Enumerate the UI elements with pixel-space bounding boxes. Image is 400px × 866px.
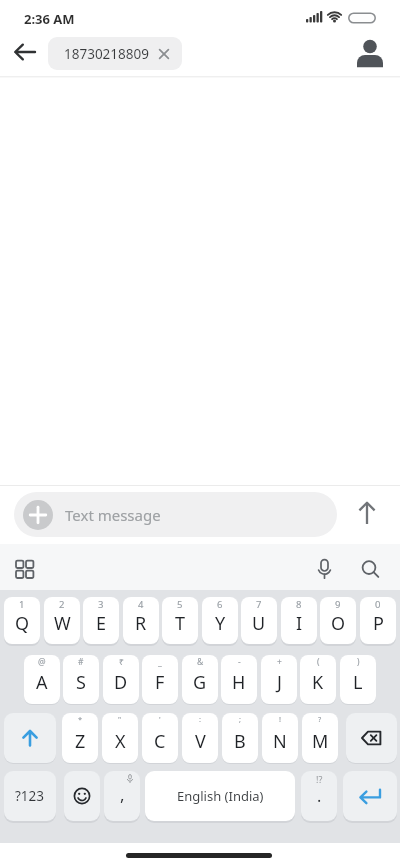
button[interactable]: *	[62, 713, 98, 763]
staticText: F	[155, 670, 165, 695]
staticText: Text message	[65, 505, 161, 525]
staticText: K	[312, 670, 324, 695]
staticText: &	[197, 656, 204, 668]
button[interactable]: 2	[44, 597, 80, 644]
staticText: L	[353, 670, 363, 695]
button[interactable]: #	[63, 655, 99, 704]
button[interactable]: 6	[202, 597, 238, 644]
staticText: English (India)	[177, 787, 264, 805]
staticText: ₹	[119, 656, 124, 668]
staticText: E	[96, 611, 107, 636]
staticText: R	[135, 611, 147, 636]
staticText: D	[114, 670, 128, 695]
staticText: (	[317, 656, 320, 668]
button[interactable]: ;	[222, 713, 258, 763]
button[interactable]: 5	[162, 597, 198, 644]
button[interactable]: (	[300, 655, 336, 704]
staticText: *	[78, 714, 83, 724]
button[interactable]: ₹	[103, 655, 139, 704]
button[interactable]: 3	[83, 597, 119, 644]
button[interactable]: 0	[360, 597, 396, 644]
button[interactable]: ?	[302, 713, 338, 763]
staticText: ,	[120, 783, 125, 806]
staticText: :	[199, 714, 202, 724]
button[interactable]: 1	[4, 597, 40, 644]
staticText: -	[238, 656, 241, 668]
staticText: '	[159, 714, 161, 724]
staticText: 4	[138, 598, 144, 611]
button[interactable]	[346, 713, 397, 763]
staticText: M	[312, 729, 329, 754]
button[interactable]	[356, 555, 385, 584]
staticText: P	[373, 611, 384, 636]
button[interactable]: 18730218809	[48, 37, 182, 70]
staticText: #	[78, 656, 84, 668]
staticText: 7	[256, 598, 262, 611]
staticText: 0	[375, 598, 381, 611]
staticText: _	[158, 656, 162, 668]
button[interactable]: '	[142, 713, 178, 763]
staticText: S	[76, 670, 86, 695]
button[interactable]: _	[142, 655, 178, 704]
button[interactable]: Text message	[14, 492, 337, 537]
button[interactable]	[310, 555, 339, 584]
staticText: W	[54, 611, 71, 636]
staticText: O	[331, 611, 346, 636]
staticText: !	[279, 714, 282, 724]
staticText: X	[115, 729, 126, 754]
staticText: V	[195, 729, 206, 754]
button[interactable]: -	[221, 655, 257, 704]
staticText: !?	[316, 773, 323, 785]
button[interactable]	[11, 555, 40, 584]
button[interactable]: )	[340, 655, 376, 704]
button[interactable]	[4, 713, 56, 763]
button[interactable]: !	[262, 713, 298, 763]
button[interactable]	[64, 771, 100, 821]
staticText: Z	[75, 729, 86, 754]
staticText: 3	[98, 598, 104, 611]
staticText: A	[36, 670, 48, 695]
button[interactable]	[8, 38, 42, 68]
staticText: 6	[217, 598, 223, 611]
button[interactable]: +	[261, 655, 297, 704]
button[interactable]	[352, 498, 382, 528]
staticText: ?	[318, 714, 322, 724]
staticText: N	[273, 729, 287, 754]
staticText: T	[175, 611, 186, 636]
button[interactable]	[352, 36, 388, 70]
staticText: @	[38, 656, 46, 668]
staticText: G	[193, 670, 207, 695]
button[interactable]: :	[182, 713, 218, 763]
staticText: 2	[59, 598, 65, 611]
button[interactable]: 4	[123, 597, 159, 644]
button[interactable]: !?	[301, 771, 337, 821]
staticText: 9	[335, 598, 341, 611]
staticText: C	[154, 729, 166, 754]
staticText: .	[317, 785, 322, 807]
staticText: )	[357, 656, 360, 668]
button[interactable]: "	[102, 713, 138, 763]
staticText: +	[277, 656, 282, 668]
staticText: "	[118, 714, 122, 724]
staticText: 8	[296, 598, 302, 611]
button[interactable]: 7	[241, 597, 277, 644]
staticText: ?123	[15, 787, 45, 805]
button[interactable]: ?123	[4, 771, 56, 821]
staticText: I	[296, 611, 303, 636]
button[interactable]: 9	[320, 597, 356, 644]
button[interactable]: English (India)	[145, 771, 295, 821]
button[interactable]: @	[24, 655, 60, 704]
staticText: 5	[177, 598, 183, 611]
staticText: Q	[15, 611, 30, 636]
staticText: 1	[19, 598, 25, 611]
staticText: Y	[215, 611, 226, 636]
staticText: B	[234, 729, 246, 754]
staticText: H	[232, 670, 246, 695]
button[interactable]	[343, 771, 397, 821]
staticText: J	[277, 670, 282, 695]
button[interactable]: 8	[281, 597, 317, 644]
button[interactable]: &	[182, 655, 218, 704]
button[interactable]: ,	[104, 771, 140, 821]
staticText: ;	[239, 714, 242, 724]
staticText: 2:36 AM	[24, 10, 75, 28]
